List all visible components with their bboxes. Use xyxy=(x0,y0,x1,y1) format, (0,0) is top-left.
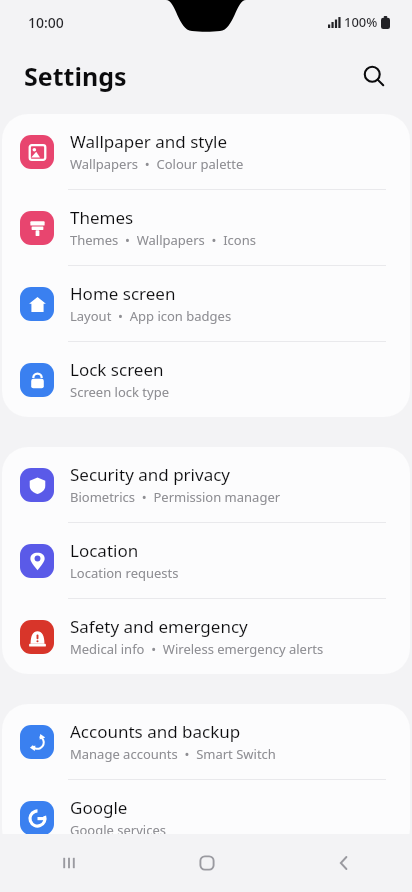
staticText: 100% xyxy=(344,13,378,31)
button[interactable]: Google xyxy=(2,780,410,855)
staticText: Layout • App icon badges xyxy=(70,307,232,325)
staticText: Settings xyxy=(24,59,127,93)
staticText: Safety and emergency xyxy=(70,615,248,638)
staticText: Screen lock type xyxy=(70,383,169,401)
staticText: 10:00 xyxy=(28,13,64,32)
button[interactable]: Back xyxy=(275,834,412,892)
button[interactable]: Home xyxy=(138,834,275,892)
button[interactable]: Home screen xyxy=(2,266,410,341)
staticText: Location requests xyxy=(70,564,179,582)
button[interactable]: Recents xyxy=(0,834,138,892)
staticText: Accounts and backup xyxy=(70,720,241,743)
button[interactable]: Search xyxy=(350,52,398,100)
button[interactable]: Security and privacy xyxy=(2,447,410,522)
staticText: Wallpapers • Colour palette xyxy=(70,155,244,173)
staticText: Themes xyxy=(70,206,134,229)
button[interactable]: Themes xyxy=(2,190,410,265)
staticText: Google services xyxy=(70,821,166,839)
staticText: Wallpaper and style xyxy=(70,130,228,153)
staticText: Home screen xyxy=(70,282,176,305)
button[interactable]: Accounts and backup xyxy=(2,704,410,779)
staticText: Lock screen xyxy=(70,358,164,381)
staticText: Security and privacy xyxy=(70,463,231,486)
button[interactable]: Safety and emergency xyxy=(2,599,410,674)
staticText: Themes • Wallpapers • Icons xyxy=(70,231,256,249)
staticText: Medical info • Wireless emergency alerts xyxy=(70,640,324,658)
staticText: Google xyxy=(70,796,128,819)
button[interactable]: Wallpaper and style xyxy=(2,114,410,189)
button[interactable]: Lock screen xyxy=(2,342,410,417)
staticText: Manage accounts • Smart Switch xyxy=(70,745,276,763)
staticText: Location xyxy=(70,539,139,562)
staticText: Biometrics • Permission manager xyxy=(70,488,281,506)
button[interactable]: Location xyxy=(2,523,410,598)
